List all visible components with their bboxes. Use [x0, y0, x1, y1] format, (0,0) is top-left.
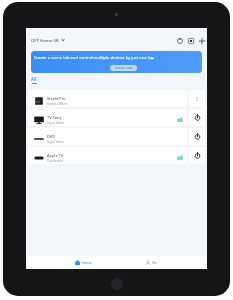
button[interactable]: Add device	[196, 35, 207, 46]
button[interactable]: Power	[189, 128, 205, 145]
staticText: All	[31, 76, 37, 82]
staticText: Home	[82, 260, 92, 265]
staticText: Connected	[47, 159, 63, 163]
button[interactable]: All	[31, 76, 37, 84]
button[interactable]: TV Sony	[28, 109, 187, 126]
button[interactable]: Home	[66, 256, 100, 269]
button[interactable]: Create now	[110, 65, 137, 71]
staticText: DVD	[47, 134, 56, 139]
button[interactable]: DVD	[28, 128, 187, 145]
button[interactable]: Create a scene tab and control multiple …	[31, 51, 202, 73]
button[interactable]: Me	[134, 256, 168, 269]
staticText: Me	[152, 260, 157, 265]
staticText: Input Video	[47, 140, 64, 144]
staticText: Apple TV	[47, 153, 64, 158]
staticText: TV Sony	[47, 115, 62, 120]
button[interactable]: Power	[189, 147, 205, 164]
button[interactable]: Shield Pro	[28, 90, 187, 107]
button[interactable]: Help	[174, 35, 185, 46]
button[interactable]: OFF Home SR	[31, 37, 65, 43]
button[interactable]: More options	[189, 90, 205, 107]
staticText: Shield Pro	[47, 96, 66, 101]
button[interactable]: Power	[189, 109, 205, 126]
staticText: OFF Home SR	[31, 37, 59, 43]
button[interactable]: Scan device	[185, 35, 196, 46]
staticText: Switch Offline	[47, 102, 68, 106]
button[interactable]: Apple TV	[28, 147, 187, 164]
staticText: Create a scene tab and control multiple …	[34, 55, 154, 61]
staticText: Create now	[115, 66, 133, 70]
staticText: Input Video	[47, 121, 64, 125]
